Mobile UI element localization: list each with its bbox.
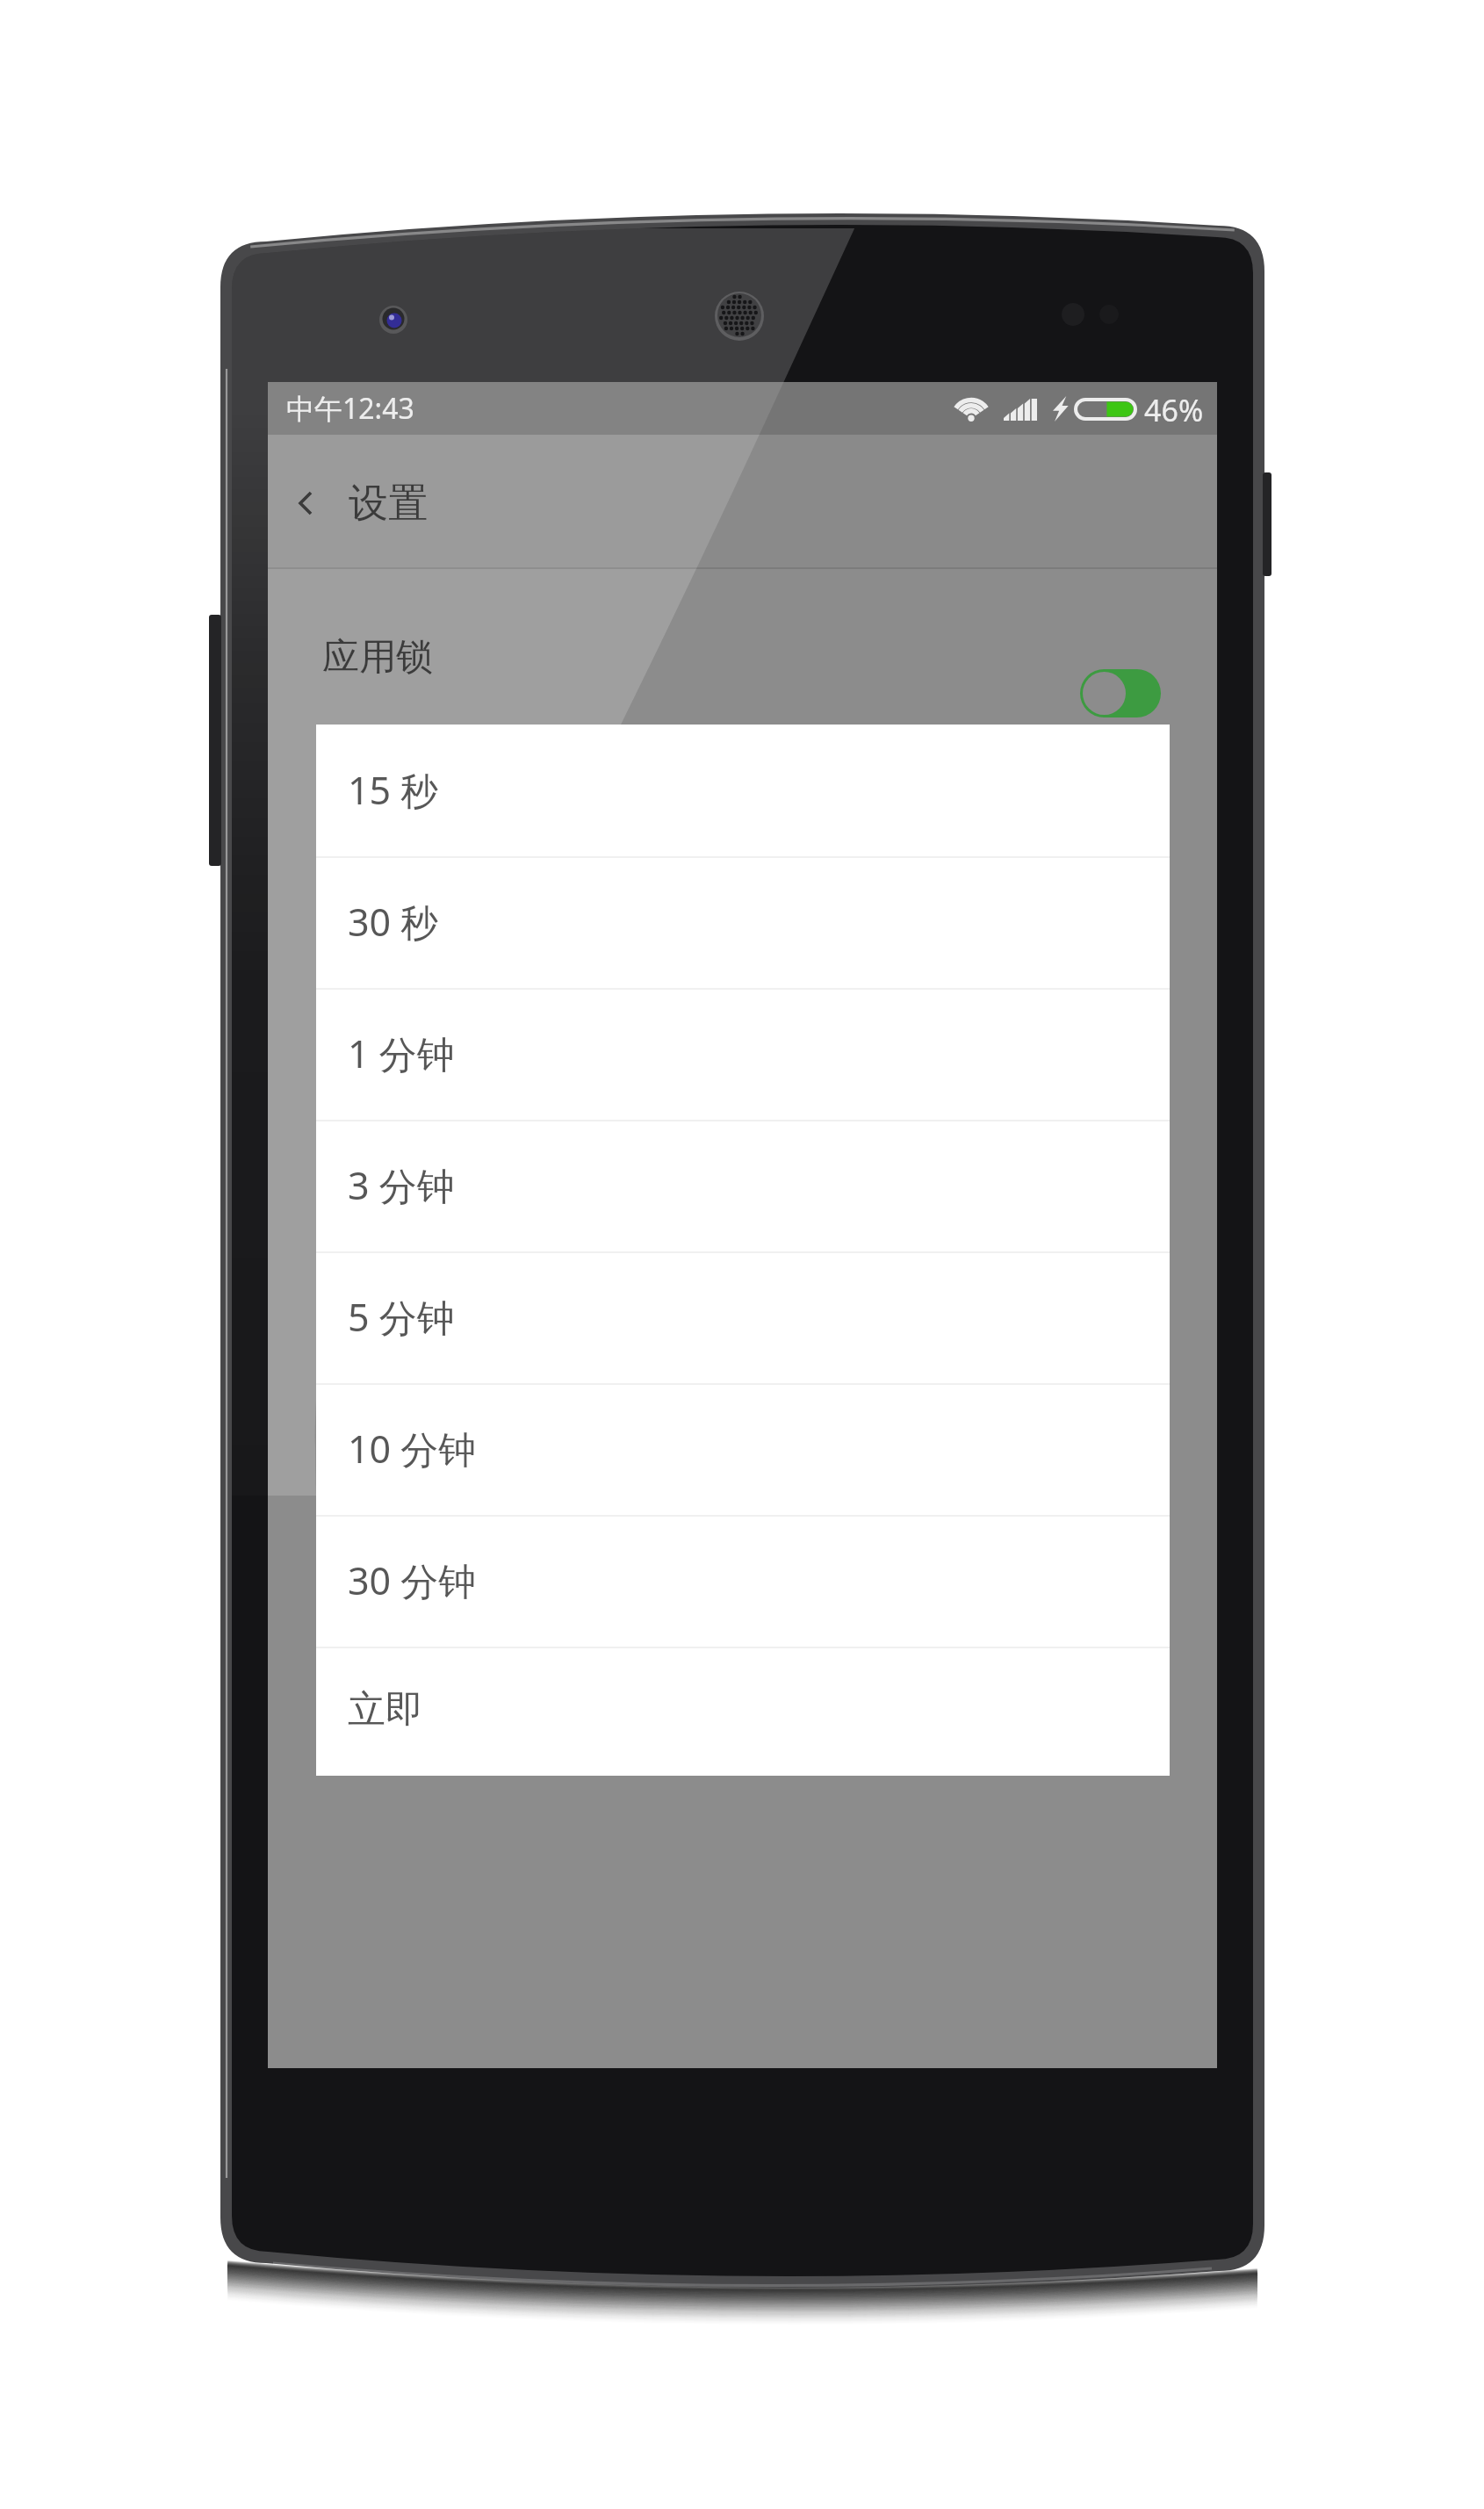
staticText: 立即 [348,1686,423,1734]
button[interactable]: 10 分钟 [316,1383,1170,1515]
staticText: 15 秒 [348,764,439,816]
button[interactable]: App lock switch, on [1080,669,1161,717]
button[interactable]: 30 分钟 [316,1515,1170,1647]
button[interactable]: 3 分钟 [316,1120,1170,1251]
button[interactable]: 30 秒 [316,856,1170,988]
staticText: 设置 [349,479,428,529]
button[interactable]: 15 秒 [316,725,1170,856]
button[interactable]: 立即 [316,1647,1170,1776]
staticText: 30 分钟 [348,1554,477,1606]
staticText: 30 秒 [348,896,439,948]
staticText: 中午12:43 [286,389,414,428]
staticText: 5 分钟 [348,1291,455,1343]
staticText: 3 分钟 [348,1159,455,1211]
staticText: 1 分钟 [348,1027,455,1079]
staticText: 46% [1144,390,1204,430]
button[interactable]: 应用锁 [268,569,1217,725]
staticText: 应用锁 [322,634,433,681]
button[interactable]: 5 分钟 [316,1251,1170,1383]
button[interactable]: Back [273,453,343,548]
staticText: 10 分钟 [348,1423,477,1474]
button[interactable]: 1 分钟 [316,988,1170,1120]
